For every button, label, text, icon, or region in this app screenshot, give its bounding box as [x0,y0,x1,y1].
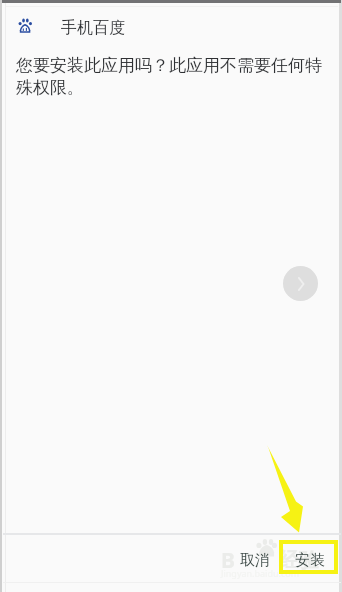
button[interactable]: Next [283,266,318,301]
staticText: 经验 [279,548,319,573]
button[interactable]: 安装 [285,546,335,574]
staticText: 您要安装此应用吗？此应用不需要任何特殊权限。 [16,55,326,98]
staticText: 手机百度 [61,18,125,38]
button[interactable]: 取消 [231,546,279,574]
staticText: 安装 [295,551,325,570]
staticText: 取消 [240,551,270,570]
staticText: Jingyan.baidu.com [221,567,300,579]
staticText: B [221,546,235,575]
